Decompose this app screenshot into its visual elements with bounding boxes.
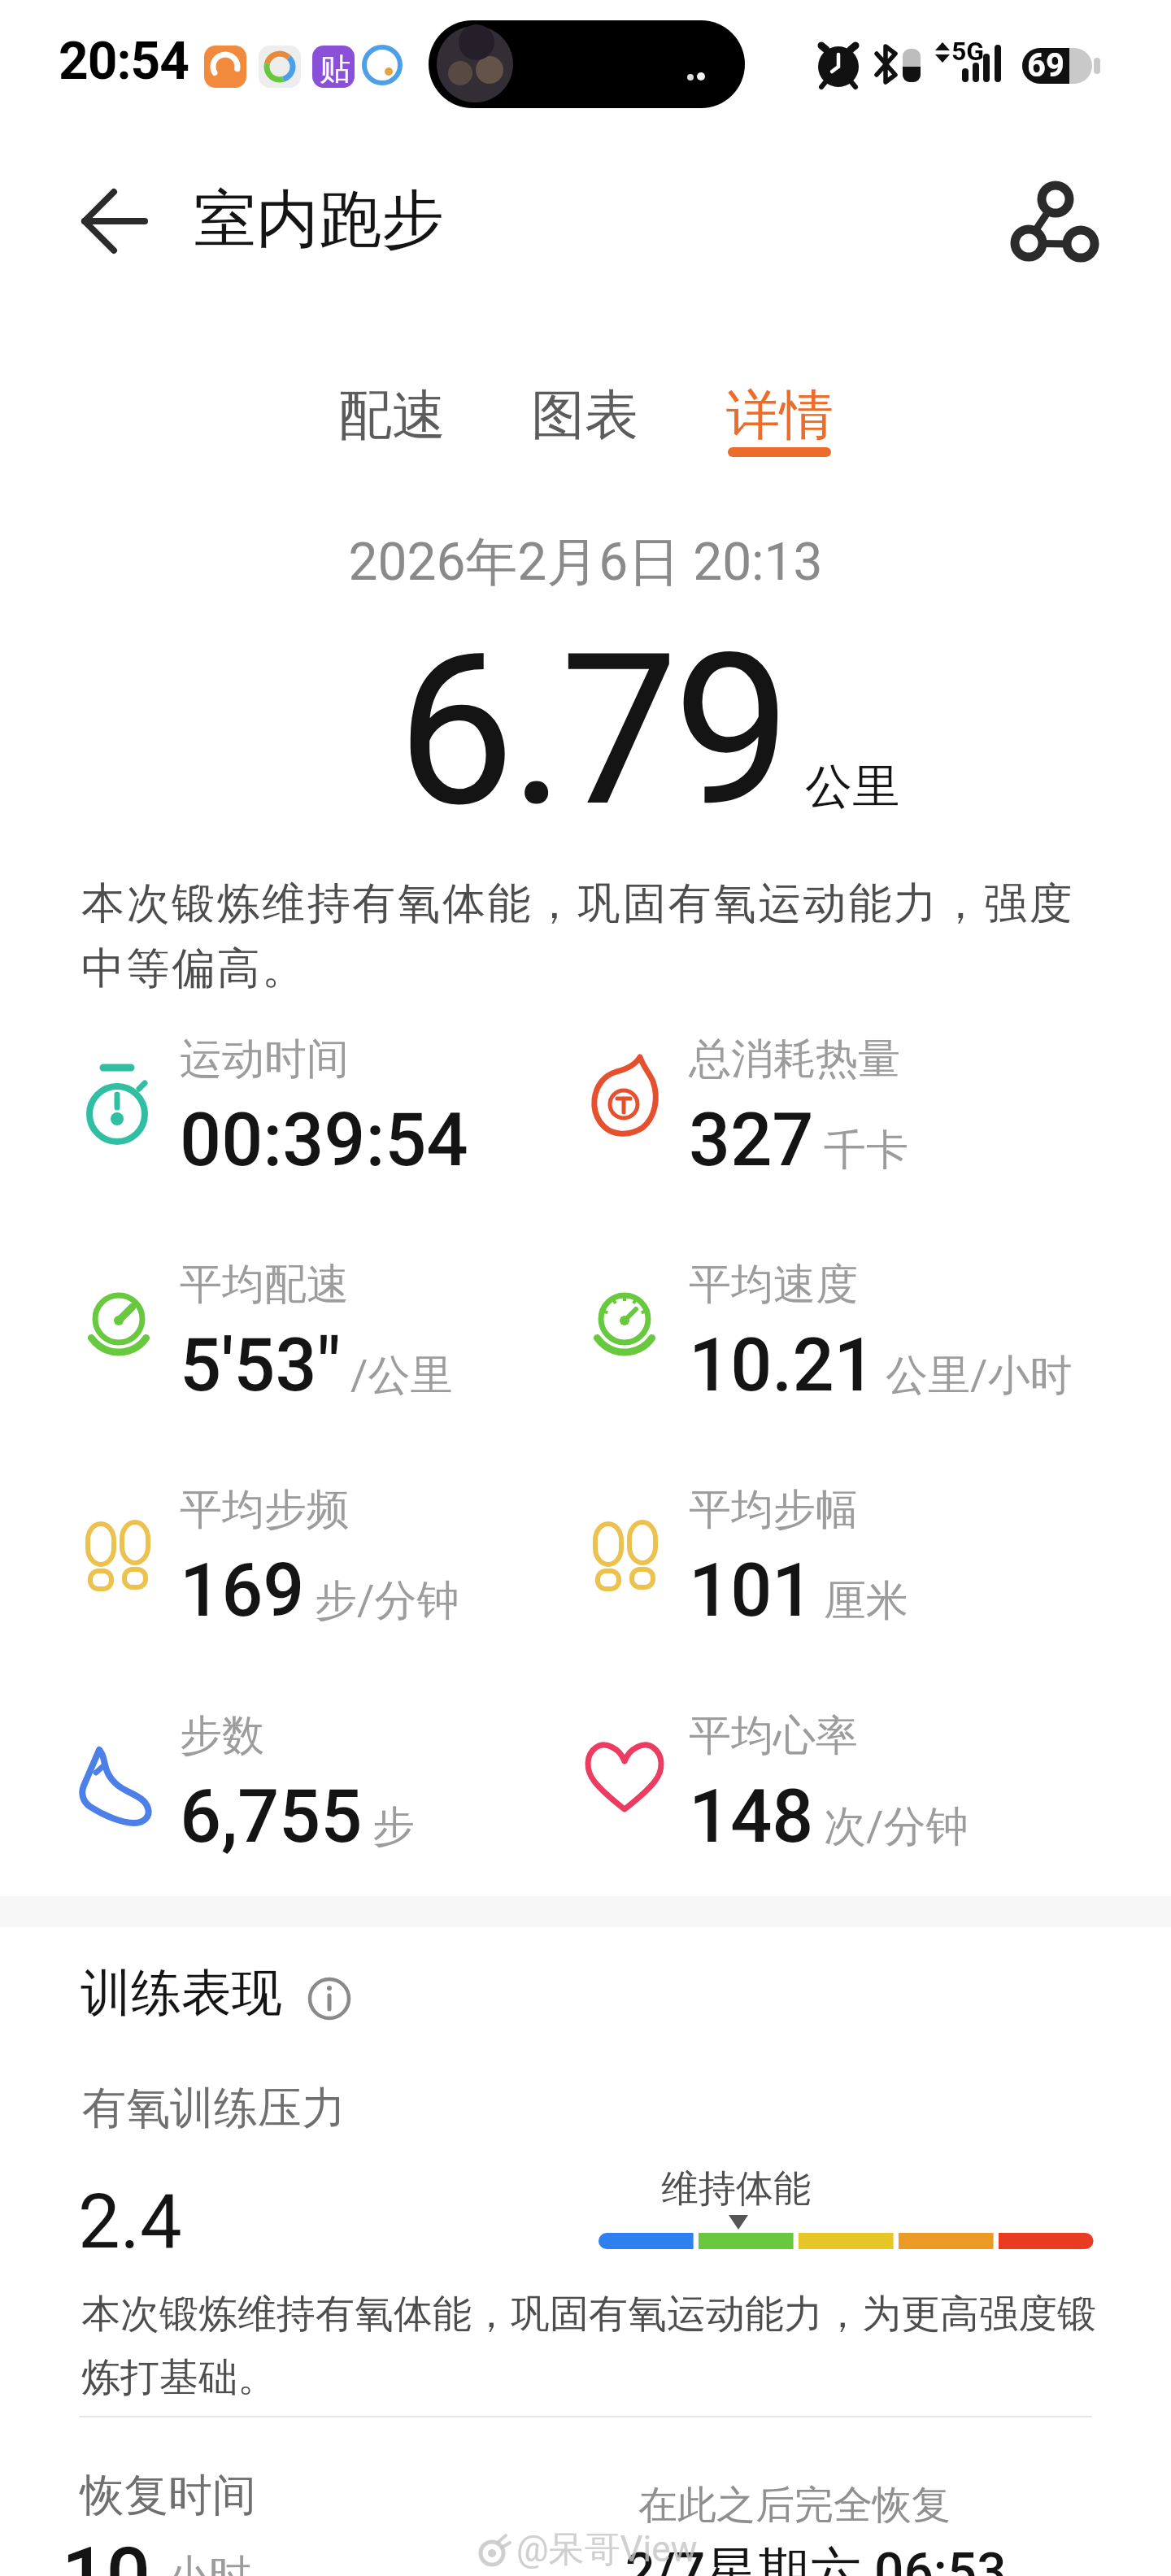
staticText: 327 <box>689 1098 814 1183</box>
staticText: 详情 <box>726 381 834 449</box>
staticText: 平均步频 <box>180 1483 349 1537</box>
staticText: 00:39:54 <box>180 1098 468 1183</box>
staticText: 20:54 <box>59 31 189 92</box>
staticText: 6,755 <box>180 1774 363 1860</box>
staticText: 公里 <box>805 757 899 816</box>
staticText: 千卡 <box>824 1124 908 1177</box>
staticText: 2.4 <box>78 2178 182 2266</box>
staticText: 小时 <box>167 2549 251 2576</box>
staticText: 步/分钟 <box>315 1574 459 1628</box>
button[interactable]: 配速 <box>322 365 456 446</box>
staticText: 5'53" <box>180 1323 341 1408</box>
staticText: 148 <box>689 1774 814 1860</box>
staticText: 平均配速 <box>180 1258 349 1312</box>
staticText: 配速 <box>338 381 446 449</box>
button[interactable] <box>305 1974 354 2023</box>
staticText: 有氧训练压力 <box>82 2081 346 2136</box>
staticText: 平均速度 <box>689 1258 858 1312</box>
staticText: 69 <box>1027 46 1064 85</box>
staticText: 训练表现 <box>81 1961 282 2025</box>
staticText: 5G <box>951 36 985 67</box>
button[interactable]: 详情 <box>712 365 846 471</box>
staticText: 公里/小时 <box>886 1349 1073 1403</box>
staticText: 恢复时间 <box>81 2468 256 2523</box>
staticText: 2/7星期六 06:53 <box>625 2539 1007 2576</box>
staticText: 维持体能 <box>661 2165 811 2213</box>
staticText: 在此之后完全恢复 <box>638 2481 951 2530</box>
staticText: 2026年2月6日 20:13 <box>0 529 1171 595</box>
staticText: 10.21 <box>689 1323 876 1408</box>
staticText: @呆哥View <box>516 2527 698 2572</box>
staticText: 总消耗热量 <box>689 1033 900 1086</box>
staticText: 次/分钟 <box>824 1800 969 1854</box>
staticText: 平均步幅 <box>689 1483 858 1537</box>
staticText: 10 <box>62 2530 151 2576</box>
button[interactable] <box>1007 181 1096 270</box>
staticText: 本次锻炼维持有氧体能，巩固有氧运动能力，强度中等偏高。 <box>81 877 1098 995</box>
staticText: 图表 <box>531 381 638 449</box>
staticText: 169 <box>180 1548 305 1634</box>
staticText: 平均心率 <box>689 1709 858 1763</box>
staticText: 6.79 <box>397 608 787 854</box>
staticText: /公里 <box>350 1349 453 1403</box>
staticText: 室内跑步 <box>194 181 444 259</box>
staticText: 厘米 <box>824 1574 908 1628</box>
staticText: 本次锻炼维持有氧体能，巩固有氧运动能力，为更高强度锻炼打基础。 <box>81 2290 1106 2402</box>
button[interactable] <box>73 181 155 262</box>
staticText: 贴 <box>320 50 350 89</box>
staticText: 101 <box>689 1548 814 1634</box>
staticText: 运动时间 <box>180 1033 349 1086</box>
button[interactable]: 图表 <box>515 365 649 446</box>
staticText: 步数 <box>180 1709 264 1763</box>
staticText: 步 <box>372 1800 415 1854</box>
